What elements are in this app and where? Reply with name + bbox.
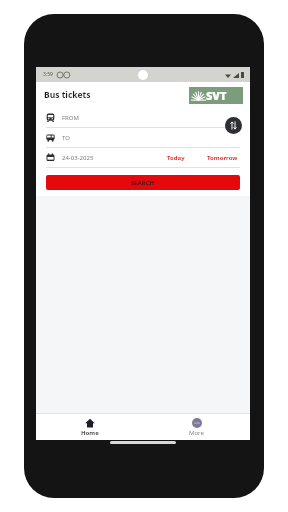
button[interactable]: Home [69,416,111,439]
staticText: Home [81,429,99,437]
button[interactable]: Swap from and to [225,117,242,134]
staticText: FROM [62,114,79,122]
staticText: 3:59 [43,71,53,78]
staticText: SVT [206,88,227,103]
button[interactable]: SVT logo [189,87,243,104]
button[interactable]: 24-03-2025 [62,154,94,162]
button[interactable]: SEARCH [46,175,240,190]
staticText: Bus tickets [44,89,91,101]
button[interactable]: TO [36,128,250,148]
staticText: More [189,429,204,437]
button[interactable]: Today [165,154,187,162]
staticText: TO [62,134,70,142]
button[interactable]: Tomorrow [205,154,240,162]
staticText: SEARCH [131,179,155,187]
button[interactable]: FROM [36,108,250,128]
button[interactable]: More [177,416,216,439]
